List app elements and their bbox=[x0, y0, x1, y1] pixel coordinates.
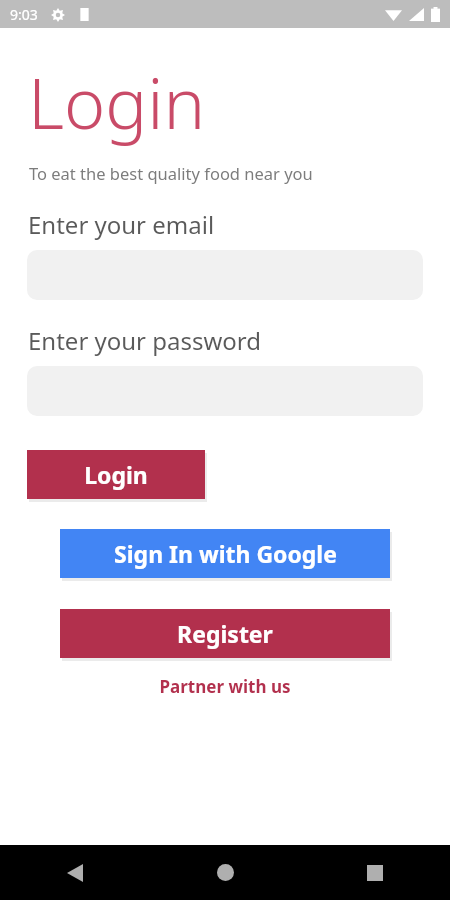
staticText: Enter your email bbox=[28, 208, 215, 241]
button[interactable]: Partner with us bbox=[0, 675, 450, 698]
staticText: Sign In with Google bbox=[114, 538, 337, 569]
staticText: 9:03 bbox=[10, 5, 38, 24]
button[interactable]: Register bbox=[60, 609, 390, 658]
button[interactable]: Back bbox=[0, 845, 150, 900]
staticText: Login bbox=[28, 54, 206, 149]
staticText: Enter your password bbox=[28, 324, 262, 357]
staticText: To eat the best quality food near you bbox=[29, 162, 313, 184]
button[interactable]: Home bbox=[150, 845, 300, 900]
button[interactable]: Sign In with Google bbox=[60, 529, 390, 578]
staticText: Login bbox=[84, 459, 148, 490]
staticText: Partner with us bbox=[159, 675, 291, 698]
button[interactable]: Recent apps bbox=[300, 845, 450, 900]
button[interactable]: Login bbox=[27, 450, 205, 499]
staticText: Register bbox=[177, 618, 273, 649]
